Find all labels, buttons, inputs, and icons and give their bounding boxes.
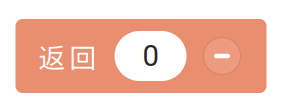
staticText: 0	[142, 39, 158, 73]
staticText: 返回	[38, 37, 96, 75]
button[interactable]: 返回	[15, 19, 266, 93]
